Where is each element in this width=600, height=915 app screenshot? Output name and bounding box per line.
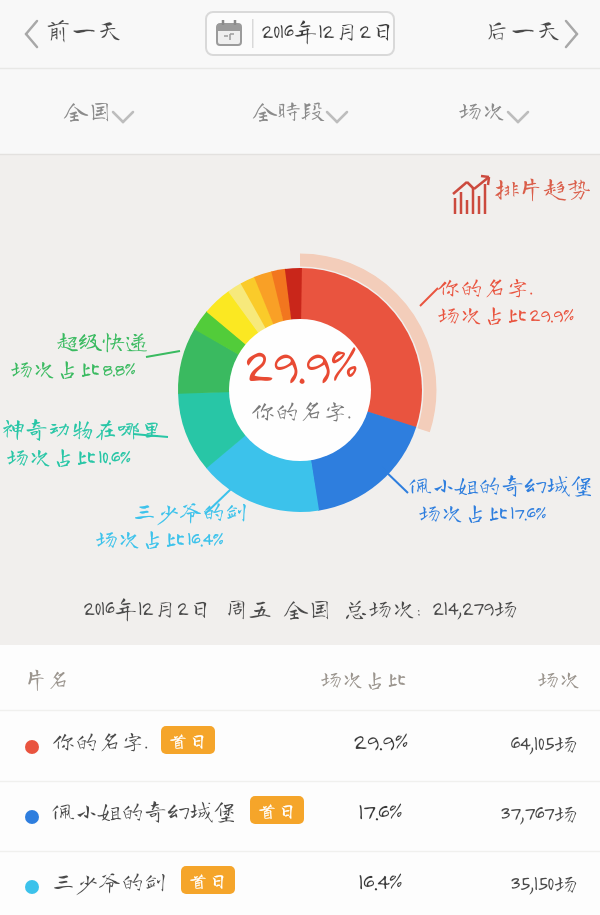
- button[interactable]: 三少爷的剑: [0, 852, 600, 915]
- staticText: 佩小姐的奇幻城堡: [52, 799, 236, 822]
- staticText: 排片趋势: [495, 176, 591, 200]
- staticText: 首日: [188, 870, 228, 890]
- staticText: 37,767场: [500, 801, 578, 825]
- staticText: 三少爷的剑: [52, 869, 167, 892]
- button[interactable]: 2016年12月2日: [205, 11, 395, 56]
- staticText: 前一天: [45, 16, 124, 42]
- button[interactable]: 首日: [181, 866, 235, 894]
- staticText: 你的名字.: [251, 398, 350, 422]
- staticText: 2016年12月2日: [261, 18, 396, 43]
- button[interactable]: 佩小姐的奇幻城堡: [0, 782, 600, 852]
- staticText: 全时段: [253, 98, 325, 122]
- staticText: 场次占比29.9%: [437, 303, 574, 326]
- button[interactable]: 场次: [445, 90, 545, 142]
- staticText: 你的名字.: [52, 729, 147, 752]
- button[interactable]: 后一天: [476, 10, 580, 58]
- staticText: 超级快递: [56, 329, 148, 352]
- staticText: 64,105场: [510, 731, 578, 755]
- staticText: 场次占比17.6%: [418, 501, 546, 524]
- staticText: 场次占比8.8%: [10, 357, 135, 380]
- button[interactable]: 排片趋势: [445, 172, 585, 222]
- button[interactable]: 前一天: [20, 10, 130, 58]
- staticText: 首日: [257, 800, 297, 820]
- staticText: 片名: [25, 668, 70, 690]
- staticText: 场次: [537, 668, 582, 690]
- staticText: 你的名字.: [437, 275, 532, 298]
- button[interactable]: 全国: [50, 90, 150, 142]
- button[interactable]: 首日: [161, 726, 215, 754]
- button[interactable]: 全时段: [240, 90, 360, 142]
- staticText: 场次: [458, 98, 506, 122]
- staticText: 场次占比10.6%: [6, 445, 131, 468]
- staticText: 后一天: [484, 16, 563, 42]
- staticText: 全国: [64, 98, 112, 122]
- staticText: 三少爷的剑: [133, 499, 248, 522]
- staticText: 场次占比: [320, 668, 409, 690]
- staticText: 佩小姐的奇幻城堡: [409, 473, 593, 496]
- staticText: 29.9%: [353, 726, 408, 754]
- staticText: 16.4%: [358, 866, 402, 894]
- staticText: 首日: [168, 730, 208, 750]
- button[interactable]: 首日: [250, 796, 304, 824]
- staticText: 35,150场: [510, 871, 578, 895]
- staticText: 神奇动物在哪里: [2, 417, 163, 440]
- staticText: 17.6%: [358, 796, 402, 824]
- staticText: 29.9%: [244, 334, 357, 392]
- button[interactable]: 你的名字.: [0, 712, 600, 782]
- staticText: 场次占比16.4%: [95, 527, 223, 550]
- staticText: 2016年12月2日 周五 全国 总场次: 214,279场: [83, 596, 518, 620]
